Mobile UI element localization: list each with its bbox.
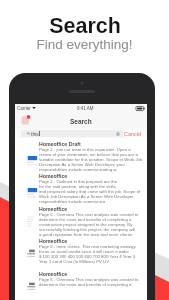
- staticText: focus on social media since it will reac…: [39, 249, 143, 254]
- staticText: and proposed salary that come with the j…: [39, 189, 141, 194]
- staticText: Page 2 - Outlined in this proposal are t…: [39, 179, 143, 184]
- staticText: for the said position, along with the sk…: [39, 184, 143, 189]
- staticText: Carrier: [17, 106, 31, 111]
- staticText: Page 2 - join our team in this expansion…: [39, 147, 143, 152]
- button[interactable]: Cancel: [124, 129, 142, 138]
- button[interactable]: Homeoffice: [15, 172, 147, 205]
- staticText: suitable candidate for this position. Sc…: [39, 157, 143, 162]
- staticText: a good reputation from the area and more…: [39, 232, 132, 237]
- button[interactable]: this: [21, 130, 123, 137]
- button[interactable]: Homeoffice Draft: [15, 140, 147, 173]
- staticText: review of your credentials, we believe t…: [39, 152, 138, 157]
- staticText: Homeoffice: [39, 206, 68, 212]
- staticText: responsibilities include communica: [39, 199, 106, 204]
- staticText: 9:41 AM: [77, 106, 94, 111]
- staticText: Cancel: [124, 131, 142, 137]
- staticText: responsibilities include communicating w: [39, 167, 117, 172]
- staticText: determine the costs and benefits of comp…: [39, 282, 132, 287]
- staticText: Page 6 - Overview This cost analysis was…: [39, 212, 139, 217]
- staticText: Homeoffice: [39, 173, 68, 179]
- button[interactable]: Clear search: [116, 132, 120, 136]
- staticText: $ 100 200 300 400 500 600 700 800 Year 4…: [39, 254, 143, 259]
- button[interactable]: Homeoffice: [15, 237, 147, 270]
- staticText: Homeoffice: [39, 238, 68, 244]
- staticText: construction project assigned to the com…: [39, 222, 133, 227]
- button[interactable]: Homeoffice: [15, 205, 147, 238]
- staticText: Page 6 - Overview This cost analysis was…: [39, 277, 139, 282]
- staticText: Work Job Description As a Senior Web Dev…: [39, 194, 143, 199]
- staticText: Page 8 - more clients. This new marketin…: [39, 244, 143, 249]
- staticText: Description As a Senior Web Developer, y…: [39, 162, 125, 167]
- staticText: Search: [70, 118, 92, 125]
- staticText: Homeoffice Draft: [39, 141, 81, 147]
- staticText: successfully finishing this project, the…: [39, 227, 143, 232]
- button[interactable]: App icon: [20, 115, 31, 126]
- staticText: Homeoffice: [39, 271, 68, 277]
- staticText: this: [31, 131, 39, 137]
- staticText: determine the costs and benefits of comp…: [39, 217, 132, 222]
- staticText: Year 1 Land Cost (in Millions) PV UV: [39, 259, 110, 264]
- button[interactable]: Homeoffice: [15, 270, 147, 300]
- staticText: Search: [49, 14, 121, 38]
- staticText: Find everything!: [36, 37, 133, 52]
